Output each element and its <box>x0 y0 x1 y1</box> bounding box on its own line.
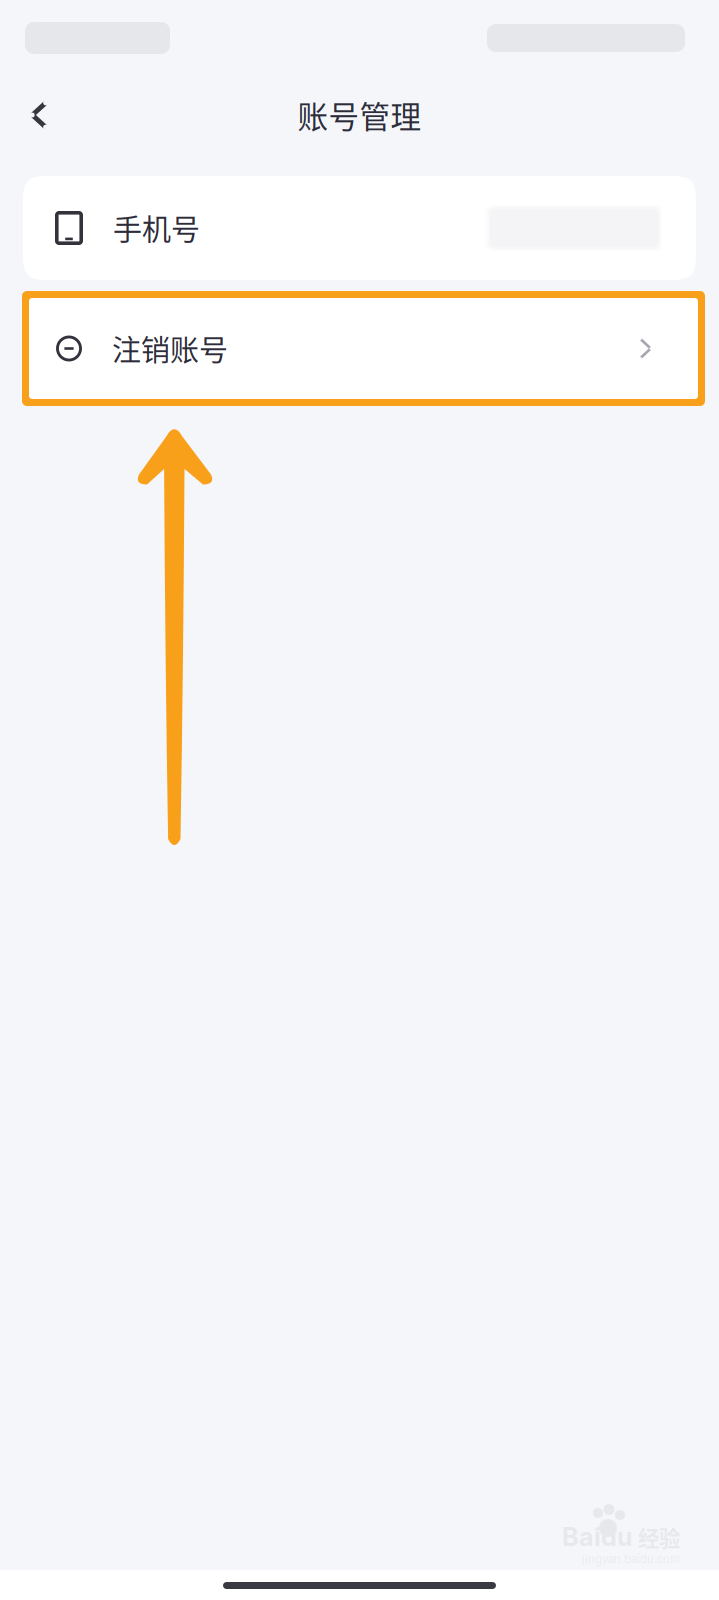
staticText: 账号管理 <box>297 93 421 137</box>
button[interactable]: 注销账号 <box>22 291 705 406</box>
staticText: 经验 <box>638 1521 680 1552</box>
staticText: 手机号 <box>113 207 200 249</box>
button[interactable]: 手机号 <box>23 176 696 280</box>
staticText: Baidu <box>562 1521 633 1552</box>
button[interactable]: Back <box>13 88 65 142</box>
staticText: 注销账号 <box>112 327 228 369</box>
staticText: jingyan.baidu.com <box>582 1552 680 1566</box>
